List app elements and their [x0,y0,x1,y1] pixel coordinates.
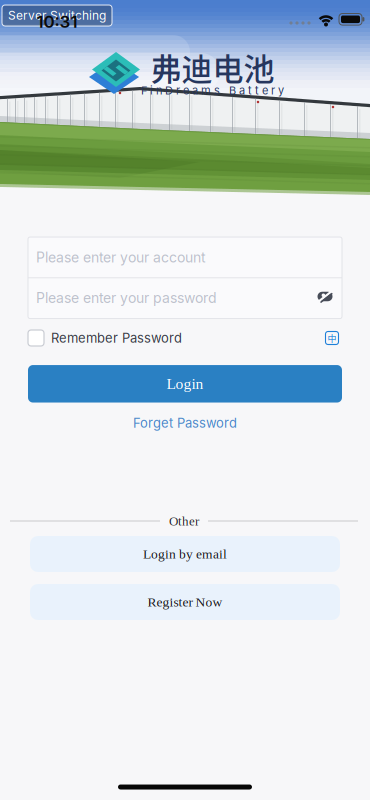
staticText: 弗迪电池 [150,45,274,89]
staticText: F i n D r e a m s B a t t e r y [141,84,284,97]
staticText: 10:31 [36,11,77,32]
staticText: Register Now [147,594,222,609]
staticText: Login [166,375,203,392]
staticText: Other [169,514,199,528]
button[interactable]: Forget Password [133,415,237,431]
button[interactable]: Remember Password [28,327,218,349]
button[interactable]: Switch language [325,331,338,344]
button[interactable]: Login by email [30,536,340,572]
button[interactable]: Server Switching [2,5,112,26]
button[interactable]: Register Now [30,584,340,620]
staticText: Login by email [143,546,227,561]
staticText: Server Switching [8,8,106,23]
staticText: Forget Password [133,415,237,431]
button[interactable]: Please enter your account [36,237,336,277]
button[interactable]: Show password [313,284,337,308]
staticText: Please enter your account [36,249,206,266]
staticText: 中 [327,331,336,344]
staticText: Please enter your password [36,290,217,306]
button[interactable]: Login [28,365,342,403]
button[interactable]: Please enter your password [36,278,336,318]
staticText: Remember Password [51,330,182,346]
